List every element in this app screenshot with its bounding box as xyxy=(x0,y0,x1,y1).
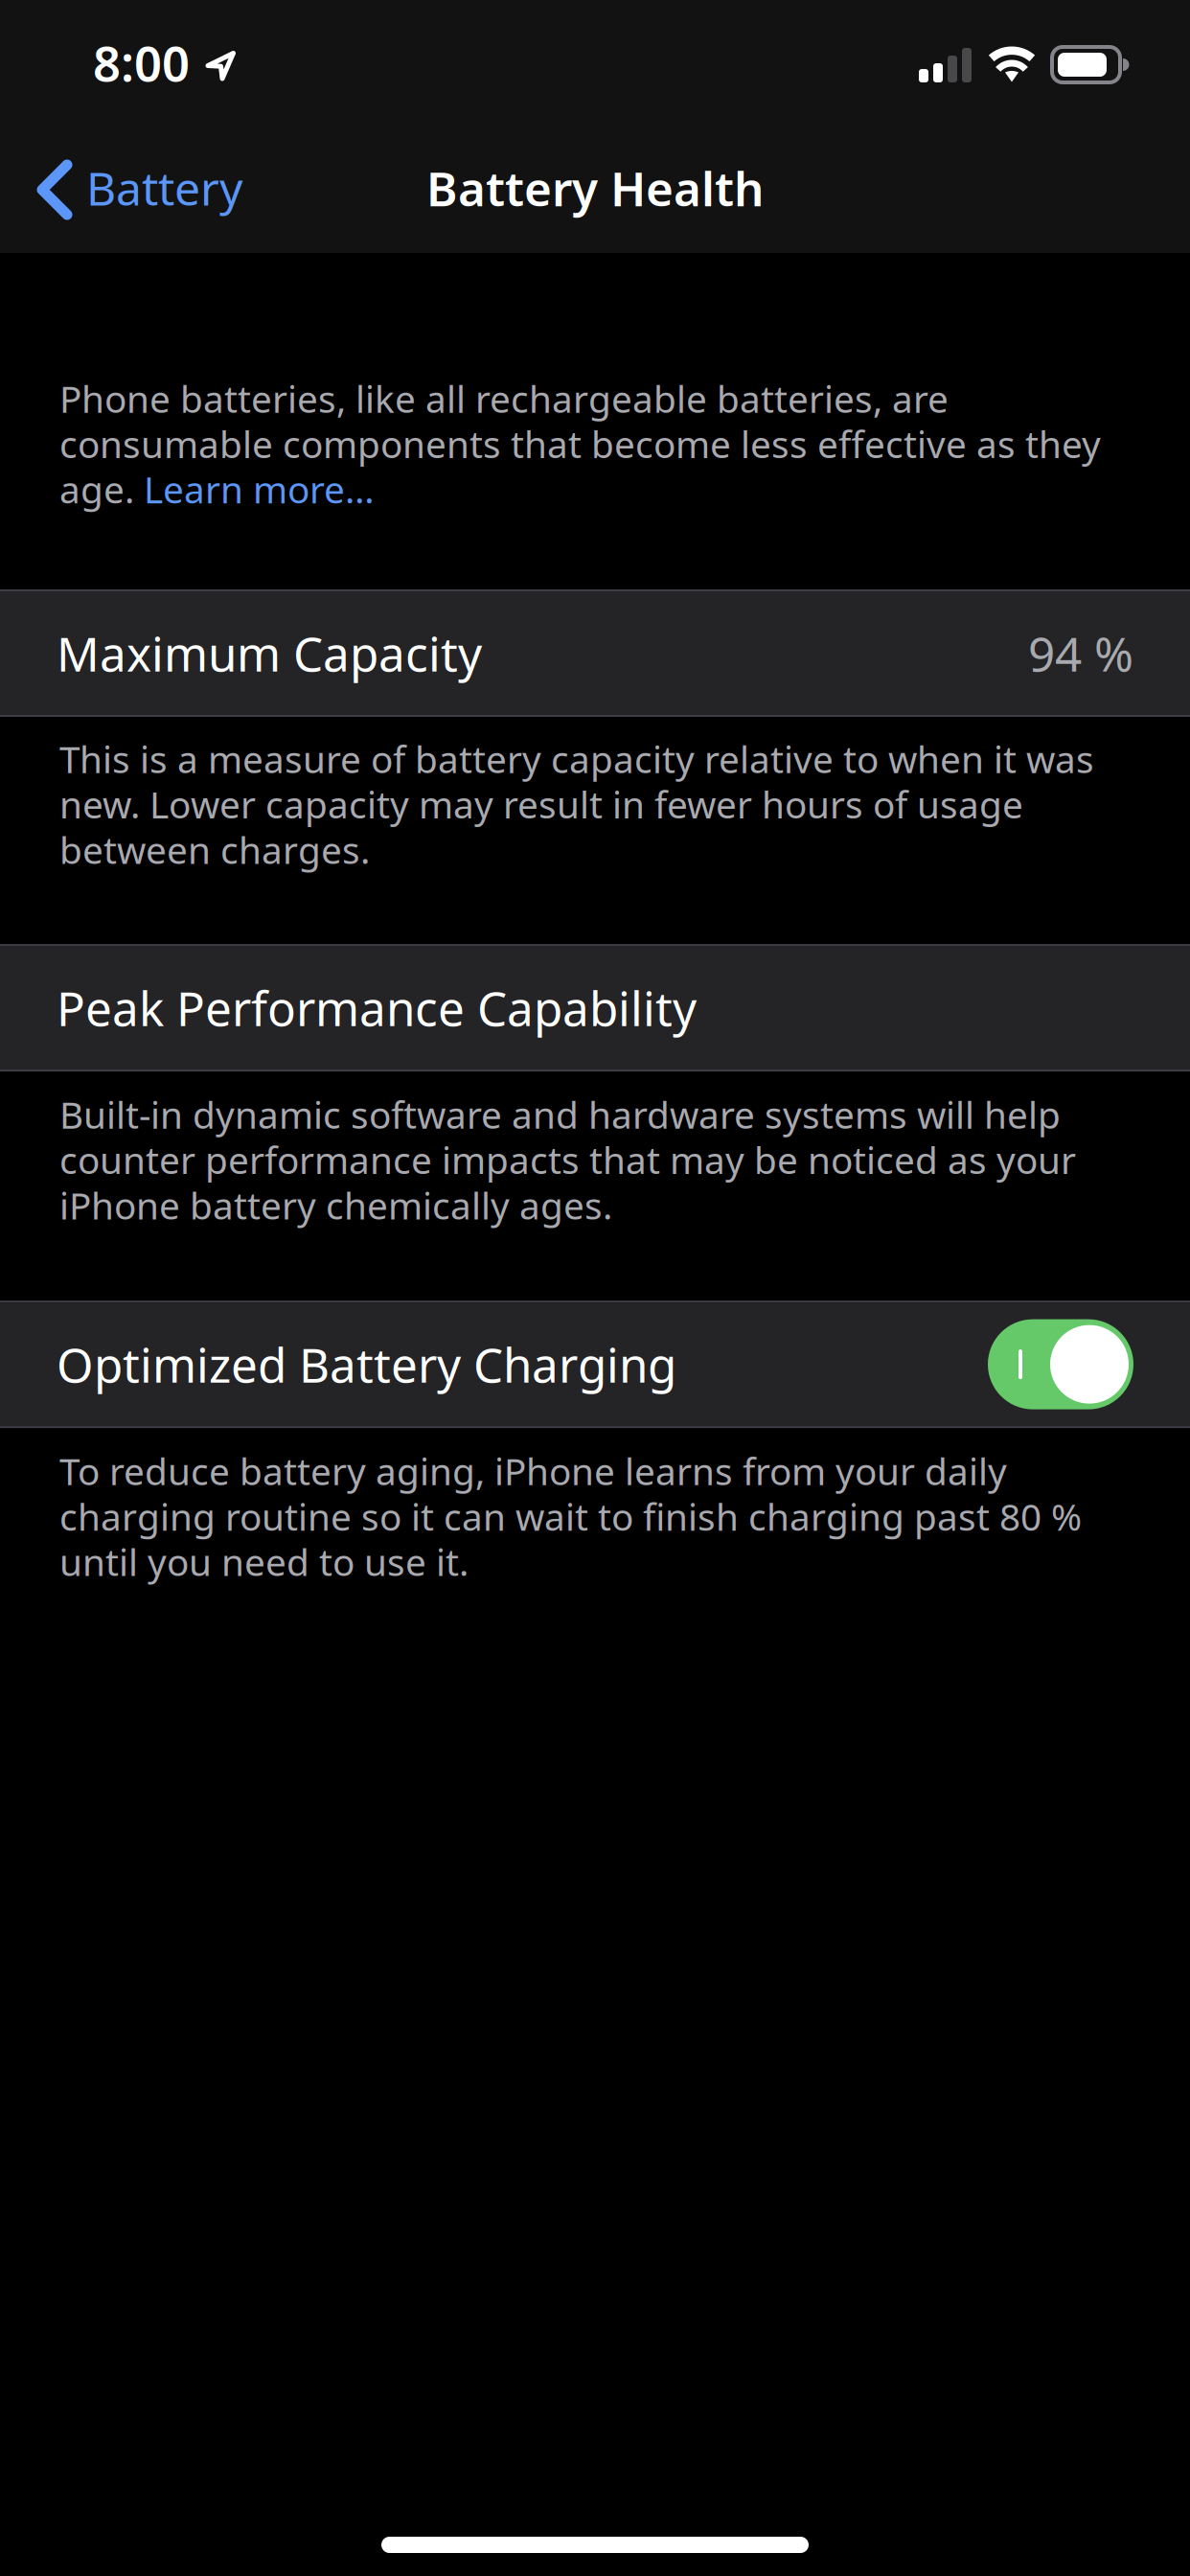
staticText: Built-in dynamic software and hardware s… xyxy=(59,1090,1061,1139)
button[interactable]: Battery xyxy=(0,136,265,243)
staticText: Learn more… xyxy=(144,465,375,514)
staticText: new. Lower capacity may result in fewer … xyxy=(59,780,1023,829)
staticText: Optimized Battery Charging xyxy=(57,1333,676,1396)
staticText: age. xyxy=(59,465,144,514)
staticText: 94 % xyxy=(1028,622,1133,685)
staticText: Phone batteries, like all rechargeable b… xyxy=(59,374,949,423)
staticText: Peak Performance Capability xyxy=(57,976,697,1039)
staticText: This is a measure of battery capacity re… xyxy=(59,734,1094,783)
staticText: To reduce battery aging, iPhone learns f… xyxy=(59,1446,1007,1495)
staticText: until you need to use it. xyxy=(59,1537,469,1586)
staticText: charging routine so it can wait to finis… xyxy=(59,1492,1082,1541)
staticText: Maximum Capacity xyxy=(57,622,482,685)
staticText: counter performance impacts that may be … xyxy=(59,1135,1076,1184)
staticText: 8:00 xyxy=(93,30,190,95)
staticText: Battery xyxy=(86,157,242,218)
staticText: consumable components that become less e… xyxy=(59,419,1101,468)
staticText: between charges. xyxy=(59,825,370,874)
button[interactable]: Learn more… xyxy=(144,465,375,514)
button[interactable]: Optimized Battery Charging xyxy=(988,1319,1133,1409)
staticText: Battery Health xyxy=(426,156,764,219)
staticText: iPhone battery chemically ages. xyxy=(59,1180,612,1230)
